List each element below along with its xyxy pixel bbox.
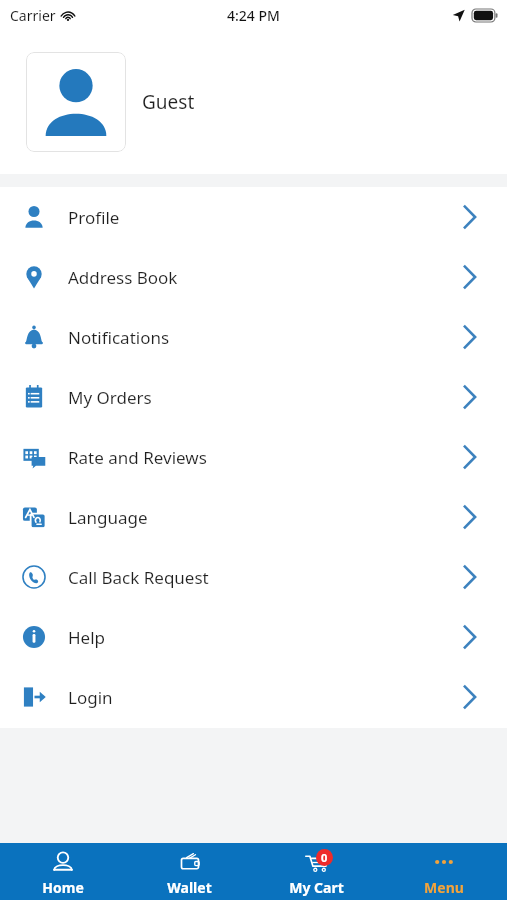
- staticText: Rate and Reviews: [68, 446, 207, 469]
- button[interactable]: Wallet: [126, 843, 253, 900]
- button[interactable]: Help: [0, 607, 507, 667]
- button[interactable]: 0: [253, 843, 380, 900]
- button[interactable]: Profile: [0, 187, 507, 247]
- staticText: Profile: [68, 206, 120, 229]
- staticText: Login: [68, 686, 113, 709]
- staticText: Help: [68, 626, 106, 649]
- button[interactable]: My Orders: [0, 367, 507, 427]
- staticText: My Orders: [68, 386, 152, 409]
- button[interactable]: Login: [0, 667, 507, 727]
- staticText: Guest: [142, 89, 195, 115]
- staticText: 0: [321, 850, 328, 865]
- button[interactable]: Language: [0, 487, 507, 547]
- button[interactable]: Notifications: [0, 307, 507, 367]
- button[interactable]: Call Back Request: [0, 547, 507, 607]
- staticText: Carrier: [10, 6, 56, 25]
- staticText: Menu: [424, 878, 464, 897]
- staticText: 4:24 PM: [227, 6, 280, 25]
- button[interactable]: Profile photo: [26, 52, 126, 152]
- staticText: Notifications: [68, 326, 170, 349]
- staticText: Language: [68, 506, 148, 529]
- staticText: Address Book: [68, 266, 178, 289]
- button[interactable]: Rate and Reviews: [0, 427, 507, 487]
- staticText: Home: [42, 878, 84, 897]
- staticText: Wallet: [167, 878, 212, 897]
- staticText: My Cart: [289, 878, 344, 897]
- button[interactable]: Menu: [380, 843, 507, 900]
- button[interactable]: Home: [0, 843, 126, 900]
- button[interactable]: Address Book: [0, 247, 507, 307]
- staticText: Call Back Request: [68, 566, 209, 589]
